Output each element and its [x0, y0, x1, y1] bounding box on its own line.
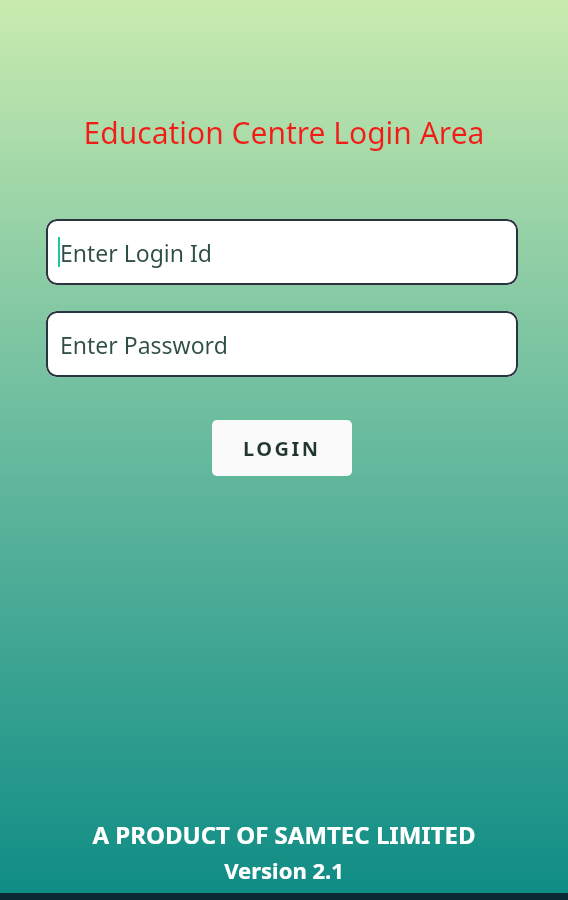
- staticText: Enter Login Id: [60, 237, 212, 268]
- button[interactable]: LOGIN: [212, 420, 352, 476]
- staticText: A PRODUCT OF SAMTEC LIMITED: [0, 818, 568, 851]
- button[interactable]: Enter Login Id: [46, 219, 518, 285]
- staticText: LOGIN: [243, 435, 321, 462]
- button[interactable]: Enter Password: [46, 311, 518, 377]
- staticText: Education Centre Login Area: [0, 112, 568, 153]
- staticText: Version 2.1: [0, 855, 568, 885]
- staticText: Enter Password: [60, 329, 228, 360]
